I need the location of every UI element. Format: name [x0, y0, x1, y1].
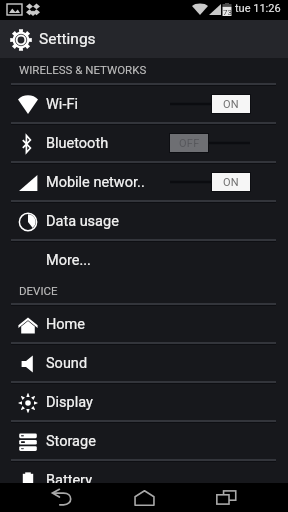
- staticText: Mobile networ..: [46, 174, 145, 191]
- button[interactable]: OFF: [170, 134, 250, 152]
- staticText: Data usage: [46, 213, 119, 230]
- staticText: Battery: [46, 472, 92, 489]
- button[interactable]: Data usage: [0, 202, 288, 241]
- button[interactable]: Sound: [0, 344, 288, 383]
- staticText: tue 11:26: [235, 2, 281, 15]
- button[interactable]: Storage: [0, 422, 288, 461]
- button[interactable]: Recent apps: [185, 483, 268, 512]
- staticText: DEVICE: [19, 284, 58, 297]
- staticText: ON: [223, 98, 240, 111]
- staticText: Storage: [46, 433, 96, 450]
- button[interactable]: Battery: [0, 461, 288, 500]
- staticText: Home: [46, 316, 86, 333]
- button[interactable]: Home: [103, 483, 185, 512]
- button[interactable]: More...: [0, 241, 288, 280]
- button[interactable]: ON: [170, 95, 250, 113]
- button[interactable]: Bluetooth: [0, 124, 288, 163]
- staticText: Display: [46, 394, 93, 411]
- staticText: Wi-Fi: [46, 96, 78, 113]
- staticText: OFF: [179, 137, 200, 150]
- staticText: WIRELESS & NETWORKS: [19, 63, 147, 76]
- button[interactable]: Mobile networ..: [0, 163, 288, 202]
- button[interactable]: ON: [170, 173, 250, 191]
- button[interactable]: Home: [0, 305, 288, 344]
- staticText: Sound: [46, 355, 88, 372]
- button[interactable]: Back: [20, 483, 103, 512]
- button[interactable]: Wi-Fi: [0, 85, 288, 124]
- staticText: Settings: [39, 30, 96, 48]
- staticText: More...: [46, 252, 91, 269]
- button[interactable]: Settings: [0, 20, 288, 58]
- button[interactable]: Display: [0, 383, 288, 422]
- staticText: ON: [223, 176, 240, 189]
- staticText: Bluetooth: [46, 135, 109, 152]
- staticText: 73: [223, 8, 232, 17]
